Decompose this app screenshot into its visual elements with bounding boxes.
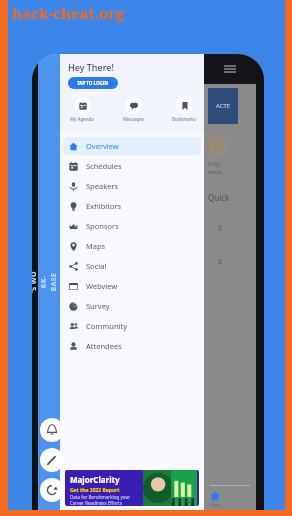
staticText: Webview (86, 281, 118, 291)
button[interactable]: Sponsors (63, 217, 201, 235)
staticText: TAP TO LOGIN (77, 80, 109, 86)
staticText: Community (86, 321, 128, 331)
button[interactable]: Overview (63, 137, 201, 155)
staticText: Sponsors (86, 221, 119, 231)
staticText: Bookmarks (172, 116, 196, 122)
button[interactable]: My Agenda (68, 97, 96, 122)
button[interactable]: Survey (63, 297, 201, 315)
staticText: Quick (208, 192, 230, 203)
button[interactable]: TAP TO LOGIN (68, 77, 118, 89)
staticText: ACTE'S NATIONAL & UTAH'S WORK-BASED LEAR… (32, 271, 119, 293)
staticText: Hey There! (68, 61, 114, 73)
button[interactable]: Bookmarks (170, 97, 198, 122)
staticText: Career Readiness Efforts (70, 500, 122, 506)
staticText: Engi (208, 160, 221, 168)
staticText: Get the 2022 Report (70, 487, 120, 494)
staticText: S (218, 257, 222, 267)
staticText: Survey (86, 301, 110, 311)
staticText: ACTE (216, 102, 231, 110)
staticText: Maps (86, 241, 106, 251)
button[interactable]: Exhibitors (63, 197, 201, 215)
staticText: Attendees (86, 341, 122, 351)
other: Menu (224, 63, 236, 75)
button[interactable]: Community (63, 317, 201, 335)
button[interactable]: Advertisement (65, 470, 199, 506)
button[interactable]: Attendees (63, 337, 201, 355)
button[interactable]: Social (63, 257, 201, 275)
button[interactable]: Refresh (40, 478, 64, 502)
staticText: Overview (86, 141, 119, 151)
staticText: Speakers (86, 181, 119, 191)
button[interactable]: Webview (63, 277, 201, 295)
staticText: Hom (210, 502, 221, 508)
button[interactable]: Maps (63, 237, 201, 255)
staticText: My Agenda (70, 116, 94, 122)
button[interactable]: Speakers (63, 177, 201, 195)
staticText: Data for Benchmarking your (70, 494, 131, 500)
staticText: Schedules (86, 161, 122, 171)
staticText: netw (208, 168, 222, 176)
button[interactable]: Notifications (40, 418, 64, 442)
staticText: Social (86, 261, 107, 271)
staticText: S (218, 223, 222, 233)
staticText: Messages (123, 116, 144, 122)
button[interactable]: Schedules (63, 157, 201, 175)
button[interactable]: Messages (121, 97, 146, 122)
staticText: hack-cheat.org (12, 3, 125, 23)
button[interactable]: Edit (40, 448, 64, 472)
staticText: MajorClarity (70, 474, 120, 485)
staticText: Exhibitors (86, 201, 122, 211)
